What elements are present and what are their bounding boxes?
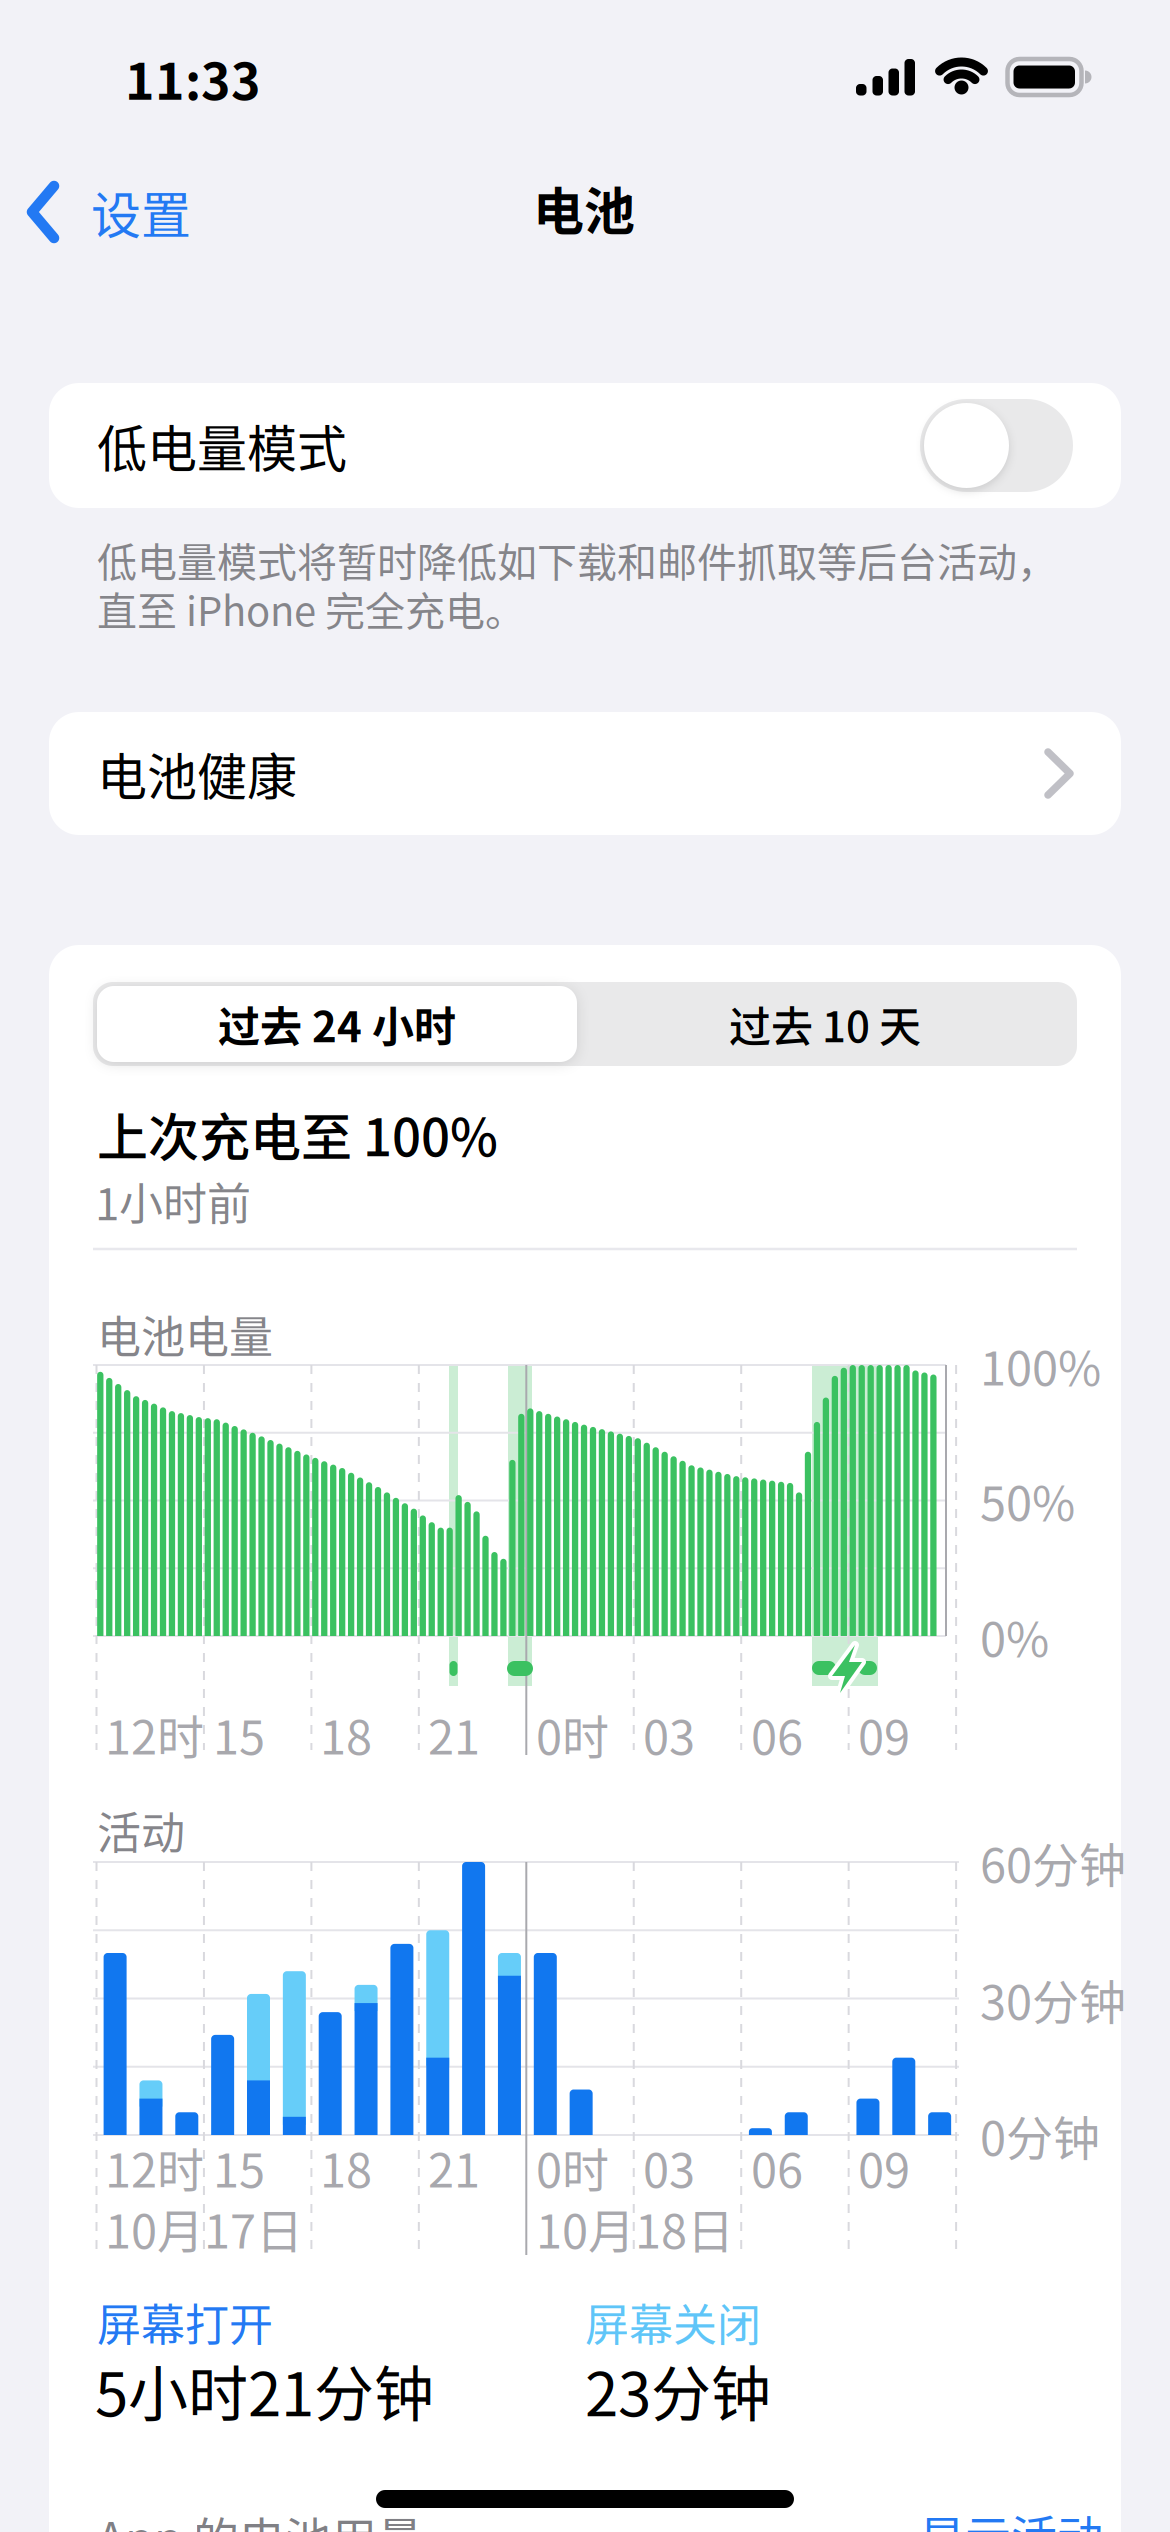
staticText: 0分钟 (980, 2101, 1100, 2169)
staticText: 过去 24 小时 (218, 994, 456, 1054)
staticText: 电池 (533, 171, 635, 245)
staticText: 活动 (97, 1798, 185, 1862)
button[interactable]: 显示活动 (919, 2501, 1109, 2532)
staticText: 09 (858, 1700, 910, 1768)
staticText: 03 (643, 2133, 695, 2201)
staticText: 12时 (105, 1700, 204, 1768)
staticText: 屏幕打开 (97, 2290, 273, 2354)
staticText: 06 (751, 2133, 803, 2201)
staticText: 5小时21分钟 (95, 2347, 434, 2433)
staticText: 低电量模式 (97, 409, 347, 482)
button[interactable]: 低电量模式 (49, 383, 1121, 508)
staticText: 30分钟 (980, 1965, 1126, 2033)
staticText: 直至 iPhone 完全充电。 (97, 579, 525, 637)
staticText: 12时 (105, 2133, 204, 2201)
staticText: 0时 (536, 1700, 609, 1768)
button[interactable]: 过去 24 小时 (95, 982, 579, 1066)
staticText: 上次充电至 100% (97, 1097, 498, 1171)
staticText: 100% (980, 1331, 1101, 1399)
staticText: 电池健康 (97, 737, 297, 810)
staticText: 屏幕关闭 (585, 2290, 761, 2354)
staticText: 03 (643, 1700, 695, 1768)
staticText: 50% (980, 1466, 1075, 1534)
staticText: 15 (213, 2133, 265, 2201)
staticText: 06 (751, 1700, 803, 1768)
staticText: 21 (428, 1700, 480, 1768)
button[interactable]: 设置 (27, 167, 267, 257)
staticText: 21 (428, 2133, 480, 2201)
button[interactable]: 过去 10 天 (579, 982, 1071, 1066)
button[interactable]: 电池健康 (49, 712, 1121, 835)
staticText: 0时 (536, 2133, 609, 2201)
staticText: 23分钟 (585, 2347, 771, 2433)
staticText: 18 (320, 2133, 372, 2201)
staticText: 电池电量 (97, 1302, 273, 1366)
staticText: 0% (980, 1602, 1049, 1670)
staticText: App 的电池用量 (97, 2503, 423, 2532)
staticText: 10月18日 (536, 2194, 734, 2262)
staticText: 低电量模式将暂时降低如下载和邮件抓取等后台活动， (97, 530, 1057, 588)
staticText: 1小时前 (95, 1169, 251, 1233)
staticText: 09 (858, 2133, 910, 2201)
staticText: 60分钟 (980, 1828, 1126, 1896)
staticText: 18 (320, 1700, 372, 1768)
staticText: 10月17日 (105, 2194, 303, 2262)
staticText: 过去 10 天 (729, 994, 921, 1054)
staticText: 显示活动 (919, 2501, 1103, 2532)
staticText: 15 (213, 1700, 265, 1768)
staticText: 11:33 (125, 42, 261, 114)
staticText: 设置 (91, 176, 191, 248)
